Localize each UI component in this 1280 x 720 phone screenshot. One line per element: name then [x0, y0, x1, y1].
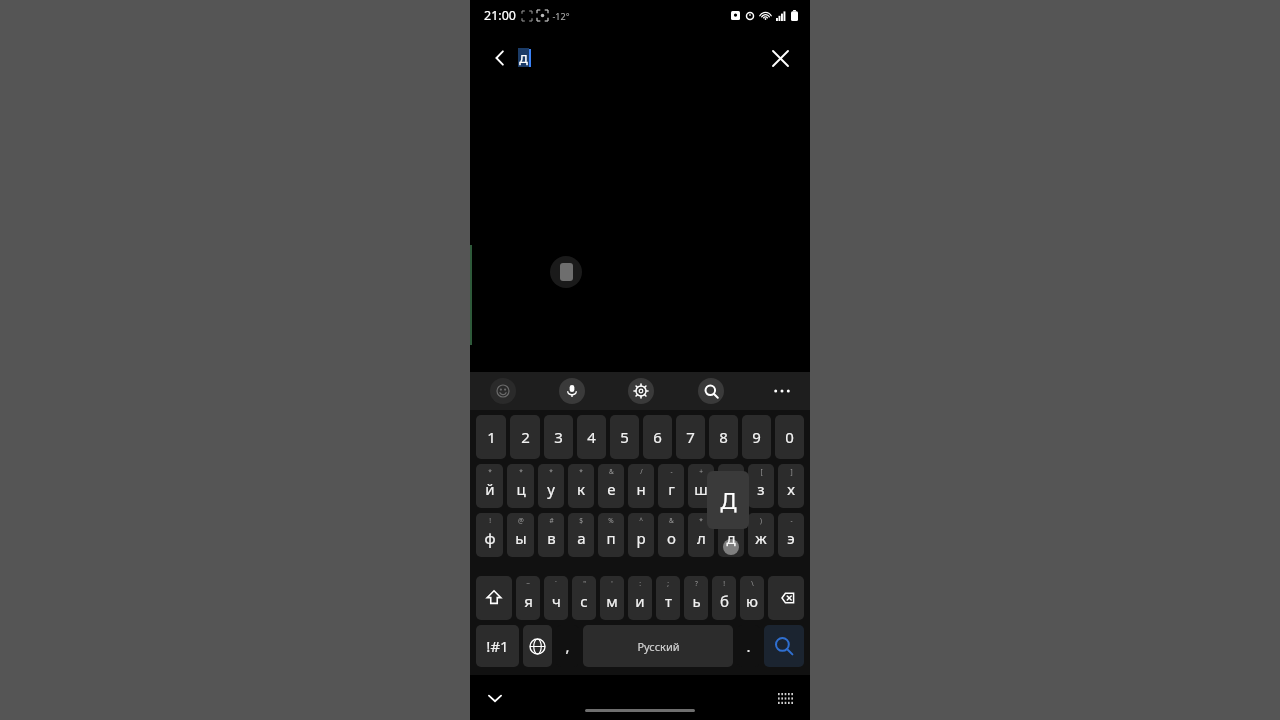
button[interactable]: # [538, 513, 564, 557]
button[interactable]: 7 [676, 415, 705, 459]
staticText: н [636, 479, 646, 499]
button[interactable]: * [568, 464, 594, 508]
button[interactable]: / [628, 464, 654, 508]
staticText: Д [720, 485, 737, 515]
button[interactable]: 0 [775, 415, 804, 459]
staticText: 4 [587, 427, 596, 447]
staticText: * [488, 467, 492, 476]
staticText: в [547, 528, 556, 548]
button[interactable]: Русский [583, 625, 733, 667]
button[interactable]: Back [482, 40, 518, 76]
button[interactable]: Hide keyboard [478, 681, 512, 715]
staticText: д [519, 48, 528, 67]
button[interactable]: 8 [709, 415, 738, 459]
staticText: ц [516, 479, 526, 499]
staticText: 2 [521, 427, 530, 447]
button[interactable]: ? [684, 576, 708, 620]
button[interactable]: : [628, 576, 652, 620]
button[interactable]: !#1 [476, 625, 519, 667]
staticText: + [699, 467, 703, 476]
button[interactable]: * [538, 464, 564, 508]
button[interactable]: Stickers [490, 378, 516, 404]
button[interactable]: , [556, 625, 579, 667]
button[interactable]: Backspace [768, 576, 804, 620]
staticText: х [787, 479, 795, 499]
staticText: ' [611, 579, 613, 588]
button[interactable]: Search [698, 378, 724, 404]
staticText: 0 [785, 427, 794, 447]
button[interactable]: - [778, 513, 804, 557]
button[interactable]: \ [740, 576, 764, 620]
button[interactable]: @ [507, 513, 534, 557]
button[interactable]: 4 [577, 415, 606, 459]
staticText: [ [760, 467, 763, 476]
staticText: ; [667, 579, 669, 588]
staticText: / [640, 467, 643, 476]
button[interactable]: Voice input [559, 378, 585, 404]
button[interactable]: ` [544, 576, 568, 620]
staticText: . [746, 636, 751, 656]
button[interactable]: $ [568, 513, 594, 557]
staticText: 7 [686, 427, 695, 447]
button[interactable]: ) [748, 513, 774, 557]
staticText: з [757, 479, 765, 499]
staticText: э [787, 528, 795, 548]
staticText: Русский [637, 639, 680, 654]
button[interactable]: & [658, 513, 684, 557]
button[interactable]: 3 [544, 415, 573, 459]
button[interactable]: = [718, 464, 744, 508]
button[interactable]: ! [712, 576, 736, 620]
button[interactable]: Shift [476, 576, 512, 620]
staticText: 3 [554, 427, 563, 447]
button[interactable]: 1 [476, 415, 506, 459]
button[interactable]: 2 [510, 415, 540, 459]
button[interactable]: More options [768, 377, 796, 405]
button[interactable]: % [598, 513, 624, 557]
staticText: - [670, 467, 673, 476]
staticText: к [577, 479, 585, 499]
staticText: т [665, 591, 672, 611]
button[interactable]: ^ [628, 513, 654, 557]
staticText: 21:00 [484, 7, 516, 24]
button[interactable]: Settings [628, 378, 654, 404]
button[interactable]: Switch keyboard [770, 683, 800, 713]
button[interactable]: ~ [516, 576, 540, 620]
button[interactable]: & [598, 464, 624, 508]
staticText: ) [760, 516, 762, 525]
button[interactable]: * [476, 464, 503, 508]
staticText: ~ [526, 579, 530, 588]
button[interactable]: + [688, 464, 714, 508]
staticText: !#1 [486, 636, 509, 656]
staticText: ь [692, 591, 701, 611]
button[interactable]: * [507, 464, 534, 508]
staticText: # [549, 516, 554, 525]
button[interactable]: - [658, 464, 684, 508]
button[interactable]: . [737, 625, 760, 667]
staticText: д [726, 528, 736, 548]
staticText: м [606, 591, 618, 611]
staticText: ] [790, 467, 793, 476]
button[interactable]: ; [656, 576, 680, 620]
staticText: ы [515, 528, 527, 548]
button[interactable]: * [688, 513, 714, 557]
button[interactable]: ' [600, 576, 624, 620]
button[interactable]: 9 [742, 415, 771, 459]
button[interactable]: Clear [762, 40, 798, 76]
staticText: щ [724, 479, 738, 499]
staticText: $ [579, 516, 583, 525]
staticText: , [565, 636, 570, 656]
button[interactable]: ! [476, 513, 503, 557]
button[interactable]: Search [764, 625, 804, 667]
staticText: * [549, 467, 553, 476]
staticText: \ [751, 579, 754, 588]
staticText: г [668, 479, 675, 499]
button[interactable]: ( [718, 513, 744, 557]
button[interactable]: [ [748, 464, 774, 508]
button[interactable]: " [572, 576, 596, 620]
button[interactable]: 6 [643, 415, 672, 459]
button[interactable]: 5 [610, 415, 639, 459]
staticText: 9 [752, 427, 761, 447]
button[interactable]: Change language [523, 625, 552, 667]
button[interactable]: ] [778, 464, 804, 508]
